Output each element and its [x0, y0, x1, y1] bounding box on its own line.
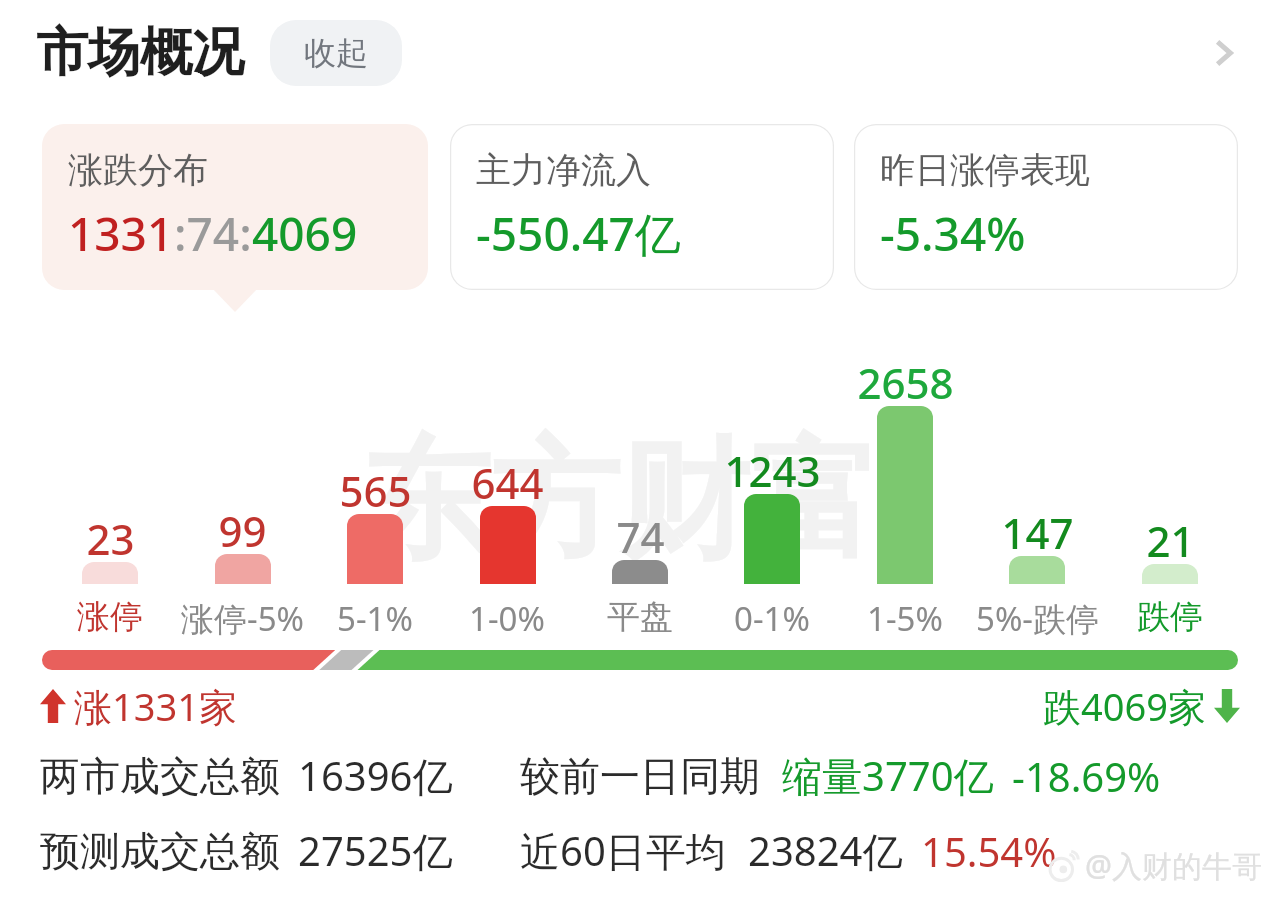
staticText: 涨停: [77, 596, 143, 638]
staticText: 1243: [724, 442, 821, 499]
staticText: 收起: [304, 33, 368, 73]
staticText: 21: [1146, 512, 1195, 569]
staticText: 主力净流入: [476, 148, 651, 192]
button[interactable]: 查看更多: [1192, 21, 1256, 85]
staticText: 23: [86, 510, 135, 567]
staticText: 平盘: [607, 596, 673, 638]
staticText: 涨停-5%: [181, 596, 304, 641]
button[interactable]: 主力净流入: [450, 124, 834, 290]
staticText: 较前一日同期: [520, 751, 760, 801]
staticText: 4069: [252, 202, 358, 265]
staticText: 昨日涨停表现: [880, 148, 1090, 192]
staticText: -5.34%: [880, 202, 1026, 265]
staticText: 跌4069家: [1043, 680, 1206, 732]
staticText: -18.69%: [1012, 749, 1161, 803]
staticText: 1-0%: [469, 596, 545, 641]
staticText: 两市成交总额: [40, 751, 280, 801]
staticText: 1-5%: [867, 596, 943, 641]
staticText: 23824亿: [748, 823, 903, 878]
staticText: 缩量3770亿: [782, 748, 994, 803]
staticText: 74: [616, 508, 665, 565]
staticText: 27525亿: [298, 823, 453, 878]
button[interactable]: 收起: [270, 20, 402, 86]
staticText: 东方财富: [360, 420, 880, 584]
staticText: 跌停: [1137, 596, 1203, 638]
staticText: 2658: [857, 354, 954, 411]
staticText: @入财的牛哥: [1085, 845, 1262, 886]
staticText: 147: [1001, 504, 1074, 561]
staticText: 0-1%: [734, 596, 810, 641]
staticText: 15.54%: [921, 824, 1057, 878]
staticText: -550.47亿: [476, 202, 681, 265]
staticText: 5-1%: [337, 596, 413, 641]
staticText: 预测成交总额: [40, 826, 280, 876]
staticText: 16396亿: [298, 748, 453, 803]
staticText: 涨1331家: [74, 680, 237, 732]
staticText: 565: [339, 462, 412, 519]
staticText: 5%-跌停: [976, 596, 1099, 641]
button[interactable]: 昨日涨停表现: [854, 124, 1238, 290]
staticText: :74:: [174, 202, 252, 265]
button[interactable]: 涨跌分布: [42, 124, 428, 290]
staticText: 1331: [68, 202, 174, 265]
staticText: 99: [218, 502, 267, 559]
staticText: 644: [471, 454, 544, 511]
staticText: 市场概况: [36, 20, 244, 86]
staticText: 近60日平均: [520, 823, 726, 878]
staticText: 涨跌分布: [68, 148, 208, 192]
